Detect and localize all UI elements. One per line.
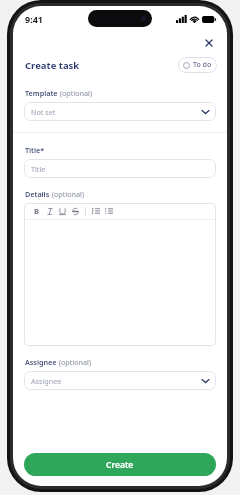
staticText: 9:41 bbox=[25, 13, 43, 25]
button[interactable]: Italic bbox=[43, 204, 56, 218]
staticText: (optional) bbox=[50, 189, 85, 199]
staticText: (optional) bbox=[57, 357, 92, 367]
staticText: Create task bbox=[25, 59, 80, 72]
button[interactable]: Numbered list bbox=[102, 204, 115, 218]
button[interactable]: Strikethrough bbox=[69, 204, 82, 218]
button[interactable]: Bulleted list bbox=[89, 204, 102, 218]
staticText: (optional) bbox=[58, 88, 93, 98]
button[interactable]: Underline bbox=[56, 204, 69, 218]
staticText: Title* bbox=[25, 145, 45, 155]
staticText: Title bbox=[31, 164, 46, 174]
button[interactable]: B bbox=[30, 204, 43, 218]
button[interactable]: Not set bbox=[24, 102, 216, 121]
staticText: B bbox=[34, 206, 39, 216]
button[interactable]: To do bbox=[178, 57, 217, 73]
staticText: Assignee bbox=[31, 376, 62, 386]
button[interactable] bbox=[24, 220, 216, 346]
staticText: Details bbox=[25, 189, 50, 199]
staticText: Create bbox=[106, 459, 134, 471]
button[interactable]: Close bbox=[199, 33, 219, 53]
staticText: To do bbox=[193, 60, 212, 70]
staticText: Assignee bbox=[25, 357, 57, 367]
button[interactable]: Assignee bbox=[24, 371, 216, 390]
button[interactable]: Title bbox=[24, 159, 216, 178]
button[interactable]: Create bbox=[24, 453, 216, 476]
staticText: Template bbox=[25, 88, 58, 98]
staticText: Not set bbox=[31, 107, 56, 117]
